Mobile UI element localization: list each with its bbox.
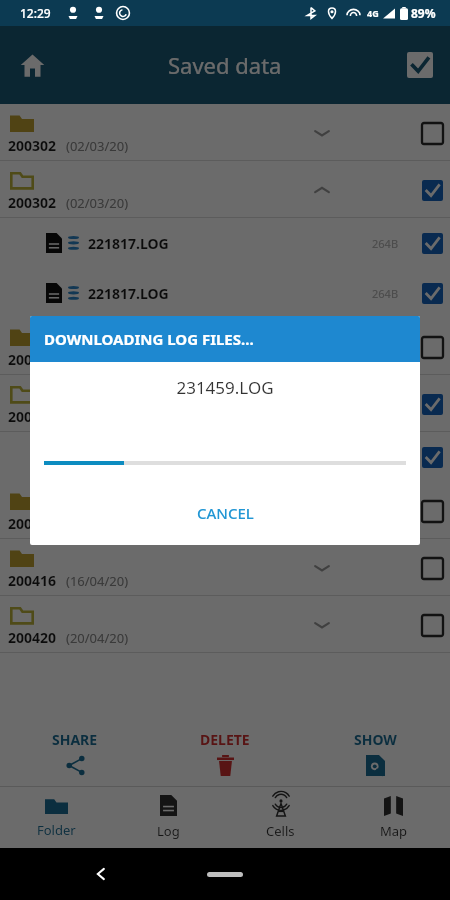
button[interactable]: 200306 — [0, 318, 450, 375]
button[interactable]: Home — [10, 43, 54, 87]
staticText: (02/03/20) — [66, 194, 129, 212]
staticText: DELETE — [200, 730, 250, 749]
button[interactable]: 200306 — [0, 375, 450, 432]
staticText: Cells — [266, 822, 295, 840]
staticText: 200302 — [8, 193, 57, 212]
button[interactable]: Folder — [0, 787, 112, 848]
button[interactable]: Expand — [305, 608, 339, 642]
staticText: 221817.LOG — [88, 284, 169, 303]
staticText: Saved data — [168, 50, 282, 80]
button[interactable]: Select file — [411, 222, 450, 264]
button[interactable]: Select folder — [411, 604, 450, 646]
button[interactable]: Select folder — [411, 547, 450, 589]
staticText: SHOW — [354, 730, 397, 749]
staticText: 200306 — [8, 350, 57, 369]
button[interactable]: 200416 — [0, 539, 450, 596]
staticText: 200416 — [8, 571, 57, 590]
staticText: 12:29 — [20, 5, 51, 21]
staticText: Map — [380, 822, 408, 840]
button[interactable]: 231459.LOG — [0, 432, 450, 482]
button[interactable]: 221817.LOG — [0, 268, 450, 318]
staticText: 231459.LOG — [30, 376, 420, 399]
button[interactable]: Cells — [224, 787, 337, 848]
staticText: (16/04/20) — [66, 572, 129, 590]
button[interactable]: Map — [337, 787, 450, 848]
button[interactable]: 200302 — [0, 104, 450, 161]
staticText: Folder — [37, 821, 76, 839]
button[interactable]: 200416 — [0, 482, 450, 539]
button[interactable]: Select folder — [411, 112, 450, 154]
button[interactable]: Select folder — [411, 326, 450, 368]
button[interactable]: SHARE — [0, 720, 150, 786]
staticText: 264B — [372, 286, 399, 301]
staticText: 200306 — [8, 407, 57, 426]
button[interactable]: 200420 — [0, 596, 450, 653]
staticText: DOWNLOADING LOG FILES... — [44, 329, 254, 349]
staticText: 89% — [411, 5, 436, 21]
staticText: SHARE — [52, 730, 98, 749]
staticText: (02/03/20) — [66, 137, 129, 155]
staticText: (20/04/20) — [66, 629, 129, 647]
button[interactable]: DELETE — [150, 720, 300, 786]
staticText: 200416 — [8, 514, 57, 533]
staticText: 264B — [372, 236, 399, 251]
button[interactable]: Select all — [398, 43, 442, 87]
button[interactable]: Expand — [305, 116, 339, 150]
button[interactable]: 200302 — [0, 161, 450, 218]
staticText: 4G — [367, 7, 379, 19]
button[interactable]: Expand — [305, 551, 339, 585]
button[interactable]: 221817.LOG — [0, 218, 450, 268]
staticText: (06/03/20) — [66, 351, 129, 369]
staticText: 231459.LOG — [88, 448, 169, 467]
staticText: 180B — [372, 450, 399, 465]
button[interactable]: Select folder — [411, 169, 450, 211]
button[interactable]: SHOW — [300, 720, 450, 786]
button[interactable]: Select folder — [411, 383, 450, 425]
button[interactable]: Select file — [411, 272, 450, 314]
button[interactable]: Select file — [411, 436, 450, 478]
button[interactable]: Expand — [305, 330, 339, 364]
staticText: 200302 — [8, 136, 57, 155]
staticText: Log — [157, 822, 180, 840]
staticText: CANCEL — [197, 503, 254, 523]
button[interactable]: Log — [112, 787, 224, 848]
staticText: 200420 — [8, 628, 57, 647]
staticText: 221817.LOG — [88, 234, 169, 253]
button[interactable]: Collapse — [305, 173, 339, 207]
button[interactable]: CANCEL — [175, 497, 276, 529]
button[interactable]: Select folder — [411, 490, 450, 532]
